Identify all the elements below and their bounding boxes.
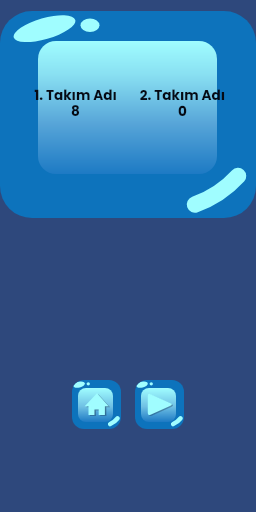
staticText: 2. Takım Adı <box>129 86 236 105</box>
staticText: 0 <box>129 102 236 121</box>
staticText: 1. Takım Adı <box>22 86 129 105</box>
button[interactable]: Home <box>72 380 121 429</box>
button[interactable]: Play <box>135 380 184 429</box>
staticText: 8 <box>22 102 129 121</box>
